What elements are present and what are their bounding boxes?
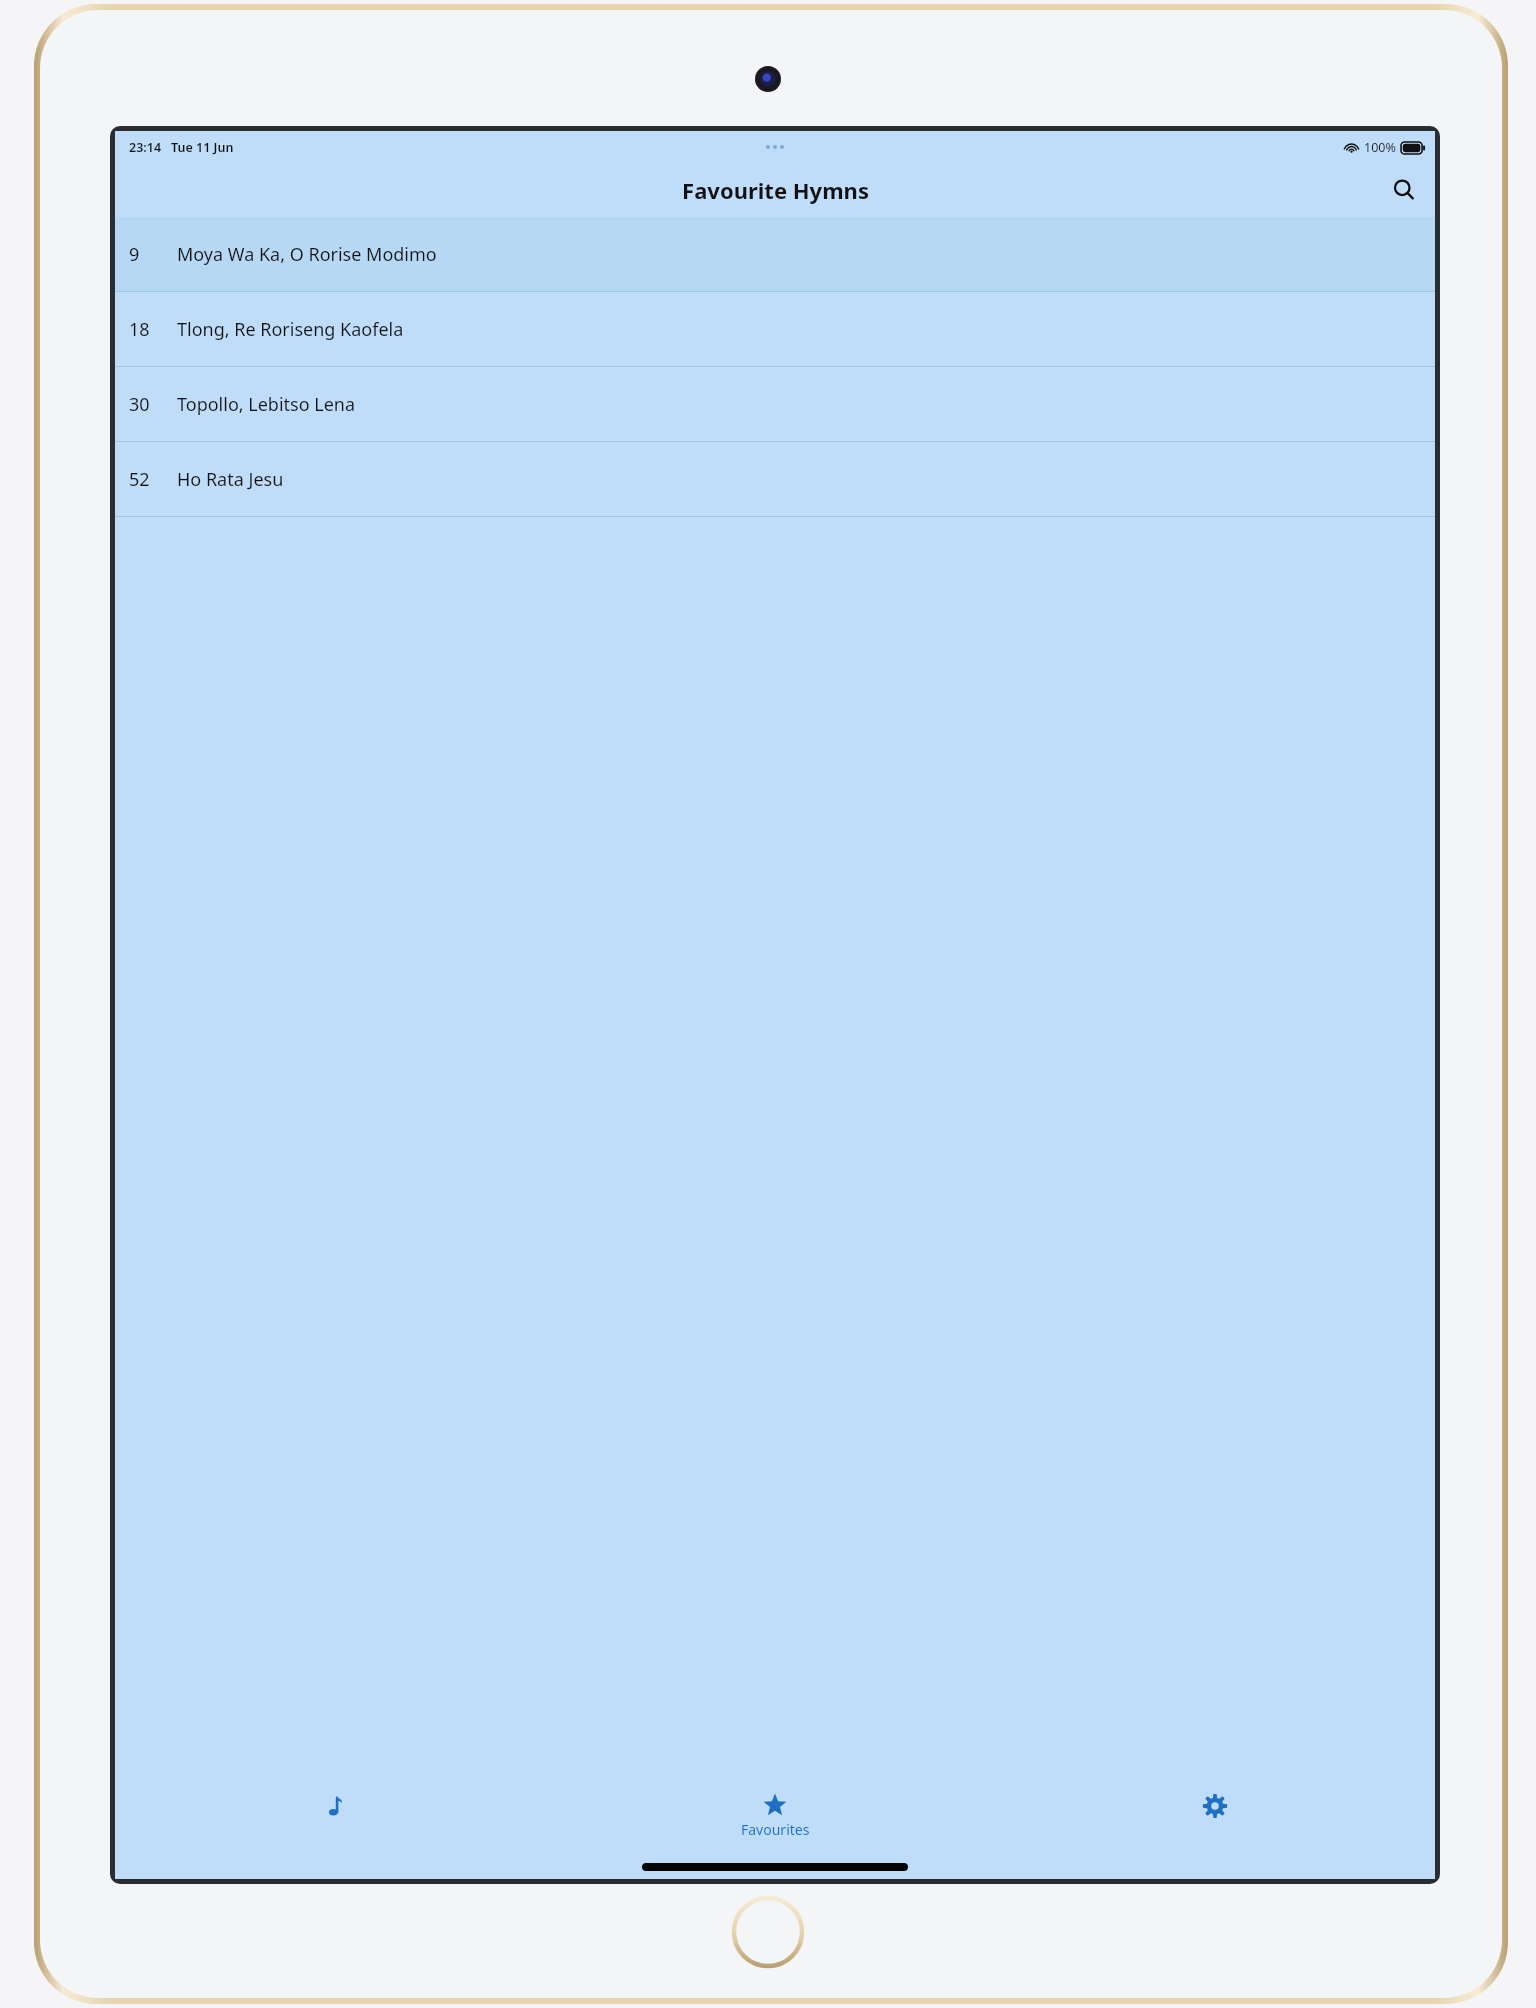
staticText: 9 <box>129 242 140 267</box>
button[interactable]: Hymns <box>115 1793 555 1853</box>
button[interactable]: 52 <box>115 442 1435 516</box>
button[interactable]: 9 <box>115 217 1435 291</box>
staticText: Moya Wa Ka, O Rorise Modimo <box>177 242 437 267</box>
button[interactable]: 30 <box>115 367 1435 441</box>
staticText: Topollo, Lebitso Lena <box>177 392 356 417</box>
button[interactable]: Search <box>1381 167 1427 213</box>
staticText: Favourite Hymns <box>682 175 869 205</box>
button[interactable]: Settings <box>995 1793 1435 1853</box>
staticText: 52 <box>129 467 150 492</box>
staticText: Tue 11 Jun <box>171 139 234 156</box>
staticText: Ho Rata Jesu <box>177 467 284 492</box>
staticText: 30 <box>129 392 150 417</box>
staticText: 100% <box>1364 139 1396 156</box>
button[interactable]: Favourites <box>555 1793 995 1853</box>
staticText: 18 <box>129 317 150 342</box>
staticText: Tlong, Re Roriseng Kaofela <box>177 317 404 342</box>
staticText: Favourites <box>741 1820 810 1839</box>
button[interactable]: 18 <box>115 292 1435 366</box>
staticText: 23:14 <box>129 139 162 156</box>
